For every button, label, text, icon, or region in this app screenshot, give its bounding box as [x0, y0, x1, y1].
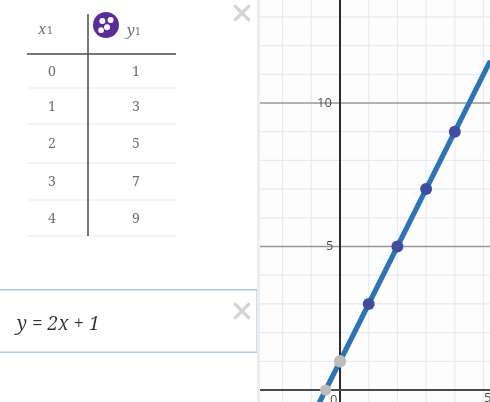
staticText: x	[38, 18, 47, 38]
staticText: 10	[317, 93, 332, 111]
staticText: y	[127, 19, 135, 39]
staticText: y = 2x + 1	[17, 310, 100, 336]
staticText: 1	[47, 23, 53, 37]
staticText: 0	[330, 390, 338, 402]
staticText: 1	[135, 24, 141, 38]
button[interactable]: y = 2x + 1	[0, 289, 258, 353]
staticText: 5	[326, 236, 334, 254]
staticText: 0	[40, 61, 64, 80]
button[interactable]: Close table	[231, 2, 253, 24]
button[interactable]: Table settings	[93, 12, 119, 38]
staticText: 5	[484, 388, 490, 402]
staticText: 3	[124, 96, 148, 115]
staticText: 2	[40, 133, 64, 152]
staticText: 5	[124, 133, 148, 152]
staticText: 1	[124, 61, 148, 80]
staticText: 3	[40, 171, 64, 190]
staticText: 4	[40, 208, 64, 227]
staticText: 9	[124, 208, 148, 227]
staticText: 1	[40, 96, 64, 115]
staticText: 7	[124, 171, 148, 190]
button[interactable]: Close equation	[231, 300, 253, 322]
